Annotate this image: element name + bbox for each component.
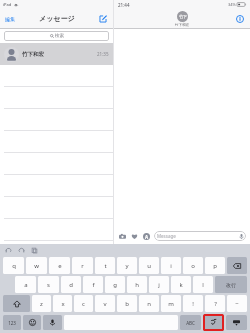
staticText: 検索 bbox=[55, 33, 64, 39]
button[interactable]: u bbox=[139, 257, 159, 274]
button[interactable]: Backspace bbox=[227, 257, 247, 274]
button[interactable]: Dictation bbox=[238, 233, 245, 240]
button[interactable]: v bbox=[95, 295, 115, 312]
button[interactable]: ABC bbox=[180, 315, 201, 330]
button[interactable]: Handwriting input bbox=[203, 314, 224, 331]
staticText: e bbox=[58, 262, 62, 270]
staticText: j bbox=[158, 281, 160, 289]
staticText: b bbox=[125, 300, 129, 308]
staticText: w bbox=[34, 262, 39, 270]
button[interactable]: e bbox=[49, 257, 70, 274]
staticText: k bbox=[179, 281, 183, 289]
staticText: s bbox=[47, 281, 50, 289]
button[interactable]: Message bbox=[154, 231, 246, 241]
staticText: i bbox=[170, 262, 172, 270]
button[interactable]: ? bbox=[205, 295, 225, 312]
staticText: 34% bbox=[228, 2, 236, 7]
button[interactable]: New message bbox=[97, 13, 109, 25]
button[interactable]: i bbox=[161, 257, 181, 274]
staticText: 竹下 bbox=[179, 14, 187, 19]
staticText: r bbox=[81, 262, 84, 270]
staticText: メッセージ bbox=[39, 14, 75, 23]
button[interactable]: k bbox=[171, 276, 191, 293]
button[interactable]: Paste bbox=[30, 246, 39, 255]
button[interactable]: 竹下和宏 bbox=[0, 43, 113, 65]
staticText: Message bbox=[157, 233, 176, 239]
button[interactable]: 改行 bbox=[215, 276, 247, 293]
staticText: − bbox=[235, 300, 239, 308]
staticText: z bbox=[40, 300, 43, 308]
staticText: 改行 bbox=[226, 282, 236, 288]
button[interactable]: ! bbox=[183, 295, 203, 312]
staticText: o bbox=[191, 262, 195, 270]
button[interactable]: d bbox=[61, 276, 81, 293]
button[interactable]: c bbox=[74, 295, 93, 312]
staticText: v bbox=[103, 300, 107, 308]
button[interactable]: Undo bbox=[4, 246, 13, 255]
staticText: iPad bbox=[3, 2, 12, 7]
button[interactable]: 検索 bbox=[4, 31, 109, 41]
button[interactable]: a bbox=[15, 276, 36, 293]
button[interactable]: Digital Touch bbox=[130, 232, 139, 241]
button[interactable]: f bbox=[83, 276, 103, 293]
staticText: c bbox=[82, 300, 85, 308]
staticText: a bbox=[24, 281, 28, 289]
button[interactable]: o bbox=[183, 257, 203, 274]
button[interactable]: n bbox=[139, 295, 159, 312]
staticText: ABC bbox=[186, 320, 195, 326]
staticText: 編集 bbox=[5, 16, 15, 22]
staticText: ? bbox=[214, 300, 217, 308]
staticText: t bbox=[104, 262, 107, 270]
staticText: y bbox=[125, 262, 129, 270]
button[interactable]: Redo bbox=[17, 246, 26, 255]
staticText: m bbox=[168, 300, 174, 308]
button[interactable]: r bbox=[72, 257, 93, 274]
button[interactable]: b bbox=[117, 295, 137, 312]
staticText: q bbox=[12, 262, 16, 270]
staticText: 21:44 bbox=[118, 2, 130, 8]
staticText: l bbox=[202, 281, 204, 289]
button[interactable]: Details bbox=[235, 14, 245, 24]
button[interactable]: p bbox=[205, 257, 225, 274]
staticText: 21:35 bbox=[97, 51, 109, 57]
button[interactable]: m bbox=[161, 295, 181, 312]
staticText: h bbox=[135, 281, 139, 289]
button[interactable]: Emoji bbox=[23, 315, 41, 330]
button[interactable]: Dictation bbox=[43, 315, 62, 330]
button[interactable]: Camera bbox=[118, 232, 127, 241]
button[interactable]: j bbox=[149, 276, 169, 293]
staticText: x bbox=[61, 300, 65, 308]
staticText: u bbox=[147, 262, 151, 270]
button[interactable]: 編集 bbox=[4, 15, 16, 23]
staticText: A bbox=[145, 234, 149, 240]
button[interactable]: y bbox=[117, 257, 137, 274]
button[interactable]: 123 bbox=[3, 315, 21, 330]
button[interactable]: l bbox=[193, 276, 213, 293]
staticText: d bbox=[69, 281, 73, 289]
staticText: 竹下和宏 bbox=[175, 23, 189, 27]
button[interactable]: − bbox=[227, 295, 247, 312]
staticText: 竹下和宏 bbox=[22, 51, 44, 58]
button[interactable]: Shift bbox=[3, 295, 30, 312]
button[interactable]: g bbox=[105, 276, 125, 293]
button[interactable]: h bbox=[127, 276, 147, 293]
button[interactable]: w bbox=[26, 257, 47, 274]
button[interactable]: z bbox=[32, 295, 51, 312]
staticText: g bbox=[113, 281, 117, 289]
button[interactable]: q bbox=[3, 257, 24, 274]
staticText: n bbox=[147, 300, 151, 308]
staticText: 123 bbox=[8, 320, 16, 326]
button[interactable]: App Store bbox=[142, 232, 151, 241]
staticText: ! bbox=[192, 300, 194, 308]
button[interactable]: Hide keyboard bbox=[226, 315, 247, 330]
button[interactable]: s bbox=[38, 276, 59, 293]
button[interactable]: t bbox=[95, 257, 115, 274]
button[interactable]: x bbox=[53, 295, 72, 312]
staticText: f bbox=[92, 281, 95, 289]
staticText: p bbox=[213, 262, 217, 270]
